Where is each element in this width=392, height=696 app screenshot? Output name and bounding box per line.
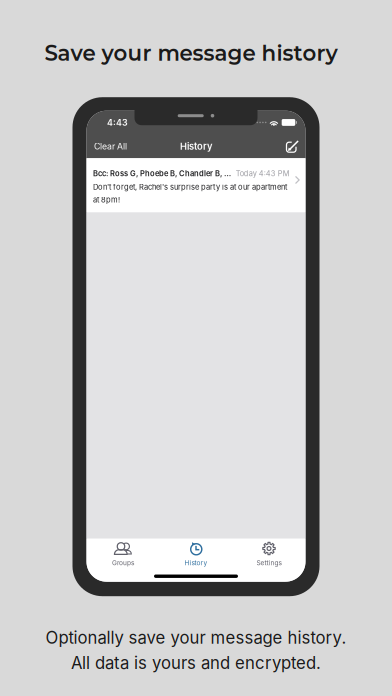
staticText: Groups (112, 559, 134, 567)
button[interactable]: Compose (279, 136, 305, 157)
button[interactable]: Clear All (86, 136, 134, 157)
staticText: Clear All (94, 141, 127, 152)
staticText: 4:43 (107, 117, 128, 128)
staticText: All data is yours and encrypted. (71, 653, 321, 673)
button[interactable]: Bcc: Ross G, Phoebe B, Chandler B, J… (86, 158, 305, 212)
staticText: Settings (256, 559, 281, 567)
button[interactable]: Settings (232, 538, 305, 568)
staticText: Today 4:43 PM (236, 169, 290, 178)
button[interactable]: History (159, 538, 232, 568)
staticText: History (184, 559, 207, 567)
staticText: Don't forget, Rachel's surprise party is… (93, 182, 287, 204)
staticText: History (180, 141, 212, 152)
staticText: Save your message history (44, 40, 337, 66)
button[interactable]: Groups (86, 538, 159, 568)
staticText: Bcc: Ross G, Phoebe B, Chandler B, J… (93, 169, 233, 178)
staticText: Optionally save your message history. (45, 628, 346, 648)
